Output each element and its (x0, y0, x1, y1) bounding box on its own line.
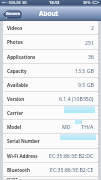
button[interactable]: Videos (3, 21, 98, 35)
staticText: Applications (7, 54, 36, 60)
staticText: Available (7, 82, 29, 88)
button[interactable]: Available (3, 78, 98, 92)
staticText: Serial Number (7, 138, 40, 144)
staticText: Carrier (7, 110, 23, 116)
button[interactable]: Model (3, 120, 98, 134)
staticText: 6.1.4 (10B350) (59, 95, 94, 102)
staticText: Videos (7, 25, 23, 31)
staticText: IMEI (7, 177, 18, 179)
staticText: 9.5 GB (78, 81, 94, 88)
staticText: 26% (83, 0, 91, 5)
staticText: About (39, 9, 59, 18)
staticText: Capacity (7, 68, 27, 74)
staticText: Model (7, 124, 22, 130)
staticText: 2 (91, 24, 94, 31)
staticText: Photos (7, 39, 23, 45)
staticText: 36 (88, 53, 94, 60)
staticText: 3G (22, 0, 27, 5)
staticText: 13:12 (49, 0, 60, 5)
button[interactable]: Applications (3, 50, 98, 64)
staticText: 13.5 GB (75, 67, 94, 74)
staticText: Version (7, 96, 25, 102)
staticText: EC:35:86:5E:B2:CE (50, 166, 94, 173)
staticText: MD TH/A (62, 123, 94, 130)
button[interactable]: Bluetooth (3, 163, 98, 177)
staticText: Wi-Fi Address (7, 153, 38, 159)
staticText: 251 (85, 39, 94, 46)
button[interactable]: Capacity (3, 64, 98, 78)
staticText: 526-03 (9, 0, 21, 5)
button[interactable]: Photos (3, 35, 98, 50)
staticText: General (6, 11, 21, 18)
button[interactable]: Wi-Fi Address (3, 149, 98, 163)
button[interactable]: Back to General (3, 11, 21, 18)
button[interactable]: Carrier (3, 106, 98, 120)
staticText: EC:35:86:5E:B2:DC (49, 152, 94, 159)
staticText: Bluetooth (7, 167, 30, 173)
button[interactable]: IMEI (3, 177, 98, 180)
button[interactable]: Serial Number (3, 134, 98, 149)
button[interactable]: Version (3, 92, 98, 106)
